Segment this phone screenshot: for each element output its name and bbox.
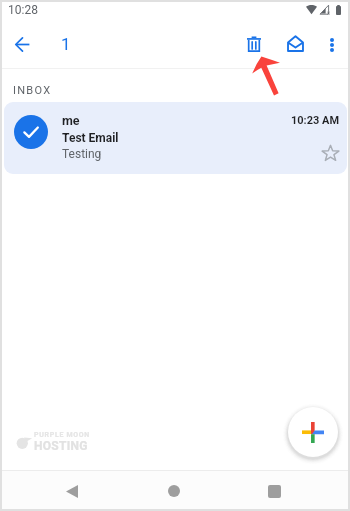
staticText: Test Email xyxy=(62,131,119,145)
button[interactable]: Star xyxy=(319,142,341,164)
staticText: 10:23 AM xyxy=(291,114,340,127)
staticText: me xyxy=(62,113,80,128)
button[interactable]: Compose xyxy=(288,407,338,457)
button[interactable]: Back xyxy=(6,21,38,67)
staticText: Testing xyxy=(62,147,102,161)
staticText: 1 xyxy=(61,34,71,54)
staticText: 10:28 xyxy=(8,3,38,17)
staticText: PURPLE MOON xyxy=(34,431,91,439)
staticText: HOSTING xyxy=(34,439,88,453)
button[interactable]: Back xyxy=(21,471,123,509)
staticText: INBOX xyxy=(13,84,52,97)
button[interactable]: Mark as read xyxy=(275,20,315,66)
button[interactable]: me xyxy=(4,102,347,174)
button[interactable]: Home xyxy=(123,471,224,509)
button[interactable]: More options xyxy=(315,22,348,68)
button[interactable]: Delete xyxy=(235,21,273,67)
button[interactable]: Recent apps xyxy=(224,471,325,509)
